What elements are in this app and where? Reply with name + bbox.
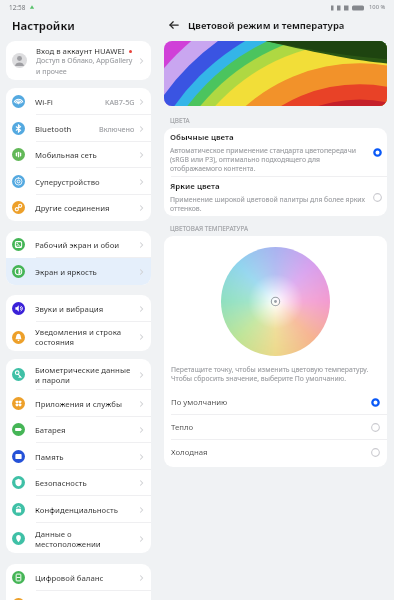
staticText: 12:58 <box>9 3 26 12</box>
staticText: По умолчанию <box>171 397 371 408</box>
button[interactable]: Обычные цвета <box>164 128 387 176</box>
button[interactable]: Биометрические данные <box>6 359 151 390</box>
staticText: состояния <box>35 337 75 347</box>
staticText: Мобильная сеть <box>35 150 97 160</box>
staticText: и пароли <box>35 375 70 385</box>
staticText: 100 % <box>369 3 386 11</box>
staticText: ЦВЕТА <box>170 116 190 125</box>
button[interactable]: Тепло <box>164 415 387 439</box>
staticText: Цифровой баланс <box>35 573 104 583</box>
staticText: Wi-Fi <box>35 97 53 107</box>
button[interactable]: Холодная <box>164 440 387 464</box>
button[interactable]: Звуки и вибрация <box>6 295 151 322</box>
button[interactable]: Экран и яркость <box>6 258 151 285</box>
staticText: Память <box>35 452 64 462</box>
staticText: Bluetooth <box>35 124 72 134</box>
staticText: Конфиденциальность <box>35 505 119 515</box>
staticText: Включено <box>99 124 135 134</box>
button[interactable]: По умолчанию <box>164 390 387 414</box>
staticText: Автоматическое применение стандарта цвет… <box>170 146 369 173</box>
staticText: Применение широкой цветовой палитры для … <box>170 195 369 213</box>
staticText: Холодная <box>171 447 371 458</box>
button[interactable]: Wi-Fi <box>6 88 151 115</box>
button[interactable]: Другие соединения <box>6 194 151 221</box>
button[interactable]: Мобильная сеть <box>6 141 151 168</box>
button[interactable]: Вход в аккаунт HUAWEI <box>6 41 151 80</box>
staticText: Доступ в Облако, AppGallery и прочее <box>36 56 136 76</box>
staticText: Тепло <box>171 422 371 433</box>
staticText: Суперустройство <box>35 177 100 187</box>
button[interactable]: Яркие цвета <box>164 177 387 216</box>
button[interactable]: Назад <box>166 17 182 33</box>
button[interactable]: Цифровой баланс <box>6 564 151 591</box>
button[interactable]: Суперустройство <box>6 168 151 195</box>
button[interactable]: Безопасность <box>6 469 151 496</box>
button[interactable]: Конфиденциальность <box>6 496 151 523</box>
staticText: Цветовой режим и температура <box>188 19 345 32</box>
button[interactable]: Приложения и службы <box>6 390 151 417</box>
staticText: Биометрические данные <box>35 365 131 375</box>
staticText: Экран и яркость <box>35 267 97 277</box>
button[interactable]: Данные о <box>6 523 151 553</box>
staticText: Настройки <box>12 18 75 33</box>
staticText: Приложения и службы <box>35 399 123 409</box>
button[interactable]: Bluetooth <box>6 115 151 142</box>
staticText: ЦВЕТОВАЯ ТЕМПЕРАТУРА <box>170 224 249 233</box>
staticText: Вход в аккаунт HUAWEI <box>36 46 125 56</box>
staticText: Батарея <box>35 425 66 435</box>
button[interactable]: Батарея <box>6 416 151 443</box>
button[interactable]: Уведомления и строка <box>6 322 151 351</box>
staticText: Другие соединения <box>35 203 110 213</box>
button[interactable]: Память <box>6 443 151 470</box>
button[interactable]: Спец. возможности <box>6 591 151 600</box>
staticText: KAB7-5G <box>105 97 135 107</box>
staticText: местоположении <box>35 539 101 549</box>
staticText: Уведомления и строка <box>35 327 122 337</box>
staticText: Безопасность <box>35 478 87 488</box>
staticText: Данные о <box>35 529 72 539</box>
staticText: Яркие цвета <box>170 181 220 192</box>
staticText: Перетащите точку, чтобы изменить цветову… <box>171 365 380 383</box>
staticText: Обычные цвета <box>170 132 234 143</box>
staticText: Звуки и вибрация <box>35 304 104 314</box>
button[interactable]: Рабочий экран и обои <box>6 231 151 258</box>
staticText: Рабочий экран и обои <box>35 240 120 250</box>
